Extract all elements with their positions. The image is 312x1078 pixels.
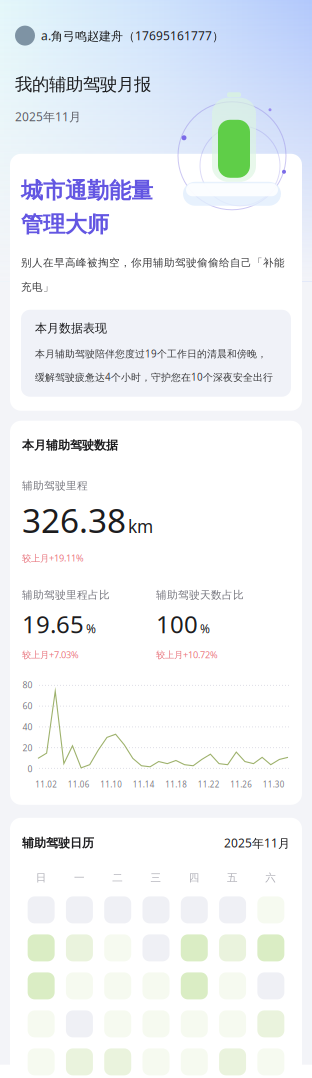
staticText: 11.30: [263, 779, 285, 790]
staticText: 80: [22, 679, 32, 691]
staticText: a.角弓鸣赵建舟（17695161777）: [41, 27, 224, 44]
staticText: 326.38: [22, 497, 126, 543]
staticText: 日: [36, 871, 47, 884]
staticText: 辅助驾驶里程: [22, 479, 88, 492]
staticText: 11.14: [133, 779, 155, 790]
staticText: 较上月+10.72%: [156, 648, 218, 661]
staticText: 0: [27, 763, 32, 775]
staticText: 11.22: [198, 779, 220, 790]
staticText: km: [128, 514, 153, 538]
staticText: 40: [22, 721, 32, 733]
staticText: 五: [227, 871, 238, 884]
staticText: 较上月+19.11%: [22, 552, 84, 564]
staticText: 60: [22, 700, 32, 712]
staticText: 11.06: [68, 779, 90, 790]
staticText: 本月辅助驾驶数据: [22, 438, 118, 453]
staticText: 11.18: [165, 779, 187, 790]
staticText: 辅助驾驶日历: [22, 835, 94, 850]
staticText: 11.26: [230, 779, 252, 790]
staticText: 较上月+7.03%: [22, 648, 79, 661]
staticText: 20: [22, 742, 32, 754]
staticText: 本月数据表现: [35, 321, 107, 336]
staticText: 六: [265, 871, 276, 884]
staticText: 我的辅助驾驶月报: [15, 74, 151, 95]
staticText: 四: [189, 871, 200, 884]
staticText: 别人在早高峰被掏空，你用辅助驾驶偷偷给自己「补能充电」: [21, 256, 285, 294]
staticText: %: [200, 620, 210, 637]
staticText: 2025年11月: [224, 835, 290, 851]
staticText: 辅助驾驶里程占比: [22, 588, 110, 602]
staticText: 三: [150, 871, 161, 884]
staticText: 二: [112, 871, 123, 884]
staticText: 11.10: [100, 779, 122, 790]
staticText: 19.65: [22, 608, 84, 640]
staticText: 本月辅助驾驶陪伴您度过19个工作日的清晨和傍晚，: [35, 347, 267, 360]
button[interactable]: a.角弓鸣赵建舟（17695161777）: [15, 25, 297, 47]
staticText: 城市通勤能量: [21, 177, 153, 204]
staticText: %: [86, 620, 96, 637]
staticText: 管理大师: [21, 210, 109, 238]
staticText: 11.02: [35, 779, 57, 790]
staticText: 缓解驾驶疲惫达4个小时，守护您在10个深夜安全出行: [35, 370, 273, 384]
staticText: 一: [74, 871, 85, 884]
staticText: 辅助驾驶天数占比: [156, 588, 244, 602]
staticText: 2025年11月: [15, 108, 81, 125]
staticText: 100: [156, 608, 198, 640]
